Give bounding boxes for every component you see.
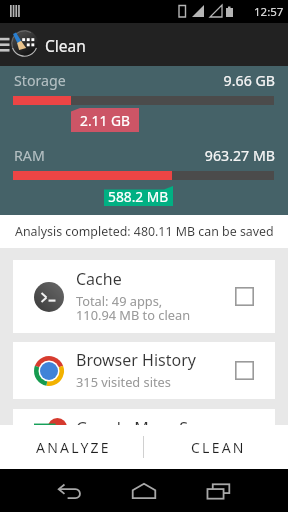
button[interactable]: CLEAN <box>144 425 288 469</box>
staticText: 2.11 GB <box>80 111 130 130</box>
staticText: RAM <box>14 146 45 165</box>
staticText: Total: 12 items, 28.4 MB to clean <box>76 441 176 473</box>
staticText: 588.2 MB <box>108 187 169 206</box>
staticText: 9.66 GB <box>0 71 275 90</box>
button[interactable]: Browser History <box>13 342 275 399</box>
staticText: CLEAN <box>191 438 246 457</box>
staticText: Cache <box>76 268 122 290</box>
staticText: Browser History <box>76 349 196 371</box>
staticText: 12:57 <box>254 4 284 20</box>
staticText: Analysis completed: 480.11 MB can be sav… <box>15 223 274 240</box>
staticText: Google Maps S... <box>76 417 201 439</box>
button[interactable]: Home <box>114 469 174 512</box>
button[interactable]: Google Maps S... <box>13 409 275 482</box>
staticText: Total: 49 apps, 110.94 MB to clean <box>76 292 191 324</box>
staticText: Storage <box>14 71 66 90</box>
button[interactable]: Back <box>40 469 100 512</box>
staticText: ANALYZE <box>36 438 111 457</box>
button[interactable]: Cache <box>13 260 275 333</box>
button[interactable]: Menu <box>0 34 11 55</box>
button[interactable]: ANALYZE <box>0 425 143 469</box>
staticText: Clean <box>45 35 86 56</box>
staticText: 315 visited sites <box>76 373 171 390</box>
staticText: 963.27 MB <box>0 146 275 165</box>
button[interactable]: Recents <box>188 469 248 512</box>
